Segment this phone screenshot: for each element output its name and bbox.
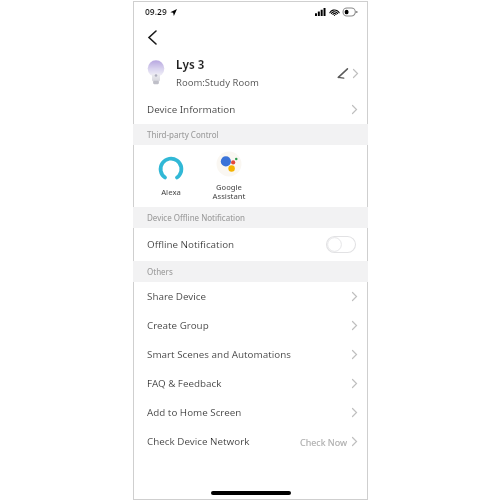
staticText: Add to Home Screen — [147, 406, 242, 419]
staticText: Device Offline Notification — [147, 212, 245, 223]
staticText: Others — [147, 266, 173, 277]
staticText: Check Device Network — [147, 435, 250, 448]
other: Edit — [334, 63, 350, 83]
staticText: Offline Notification — [147, 238, 235, 251]
button[interactable]: Offline Notification — [133, 228, 368, 261]
button[interactable]: Back — [141, 26, 163, 48]
staticText: Alexa — [161, 187, 181, 197]
button[interactable]: Alexa — [147, 156, 195, 197]
staticText: Check Now — [300, 436, 347, 448]
button[interactable]: Smart Scenes and Automations — [133, 340, 368, 369]
button[interactable]: Google Assistant — [203, 151, 255, 202]
button[interactable]: Device Information — [133, 95, 368, 124]
staticText: FAQ & Feedback — [147, 377, 222, 390]
staticText: Google Assistant — [212, 182, 246, 202]
staticText: Lys 3 — [176, 57, 205, 73]
staticText: Third-party Control — [147, 129, 219, 140]
button[interactable]: Lys 3 — [133, 51, 368, 95]
staticText: Share Device — [147, 290, 207, 303]
button[interactable]: Add to Home Screen — [133, 398, 368, 427]
staticText: Create Group — [147, 319, 209, 332]
staticText: 09.29 — [145, 6, 167, 18]
staticText: Smart Scenes and Automations — [147, 348, 291, 361]
button[interactable]: Share Device — [133, 282, 368, 311]
staticText: Device Information — [147, 103, 236, 116]
staticText: Room:Study Room — [176, 76, 259, 89]
button[interactable]: Check Device Network — [133, 427, 368, 456]
button[interactable]: FAQ & Feedback — [133, 369, 368, 398]
other: Offline Notification toggle — [326, 236, 356, 253]
button[interactable]: Create Group — [133, 311, 368, 340]
